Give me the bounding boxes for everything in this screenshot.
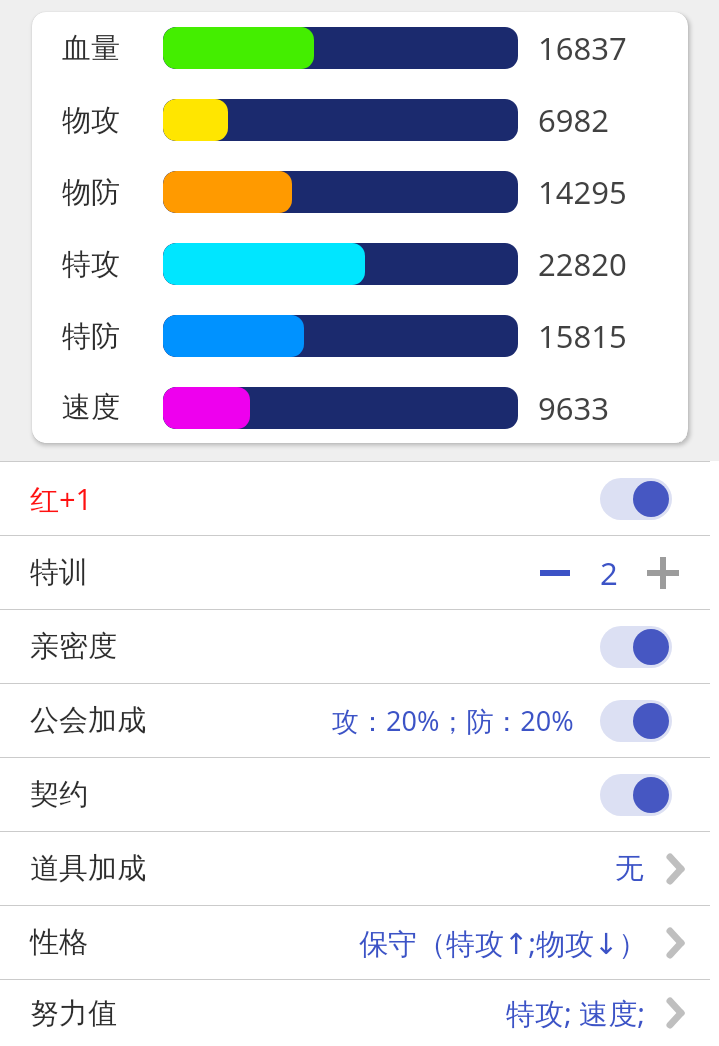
button[interactable]: Toggle — [600, 478, 672, 520]
staticText: 9633 — [538, 387, 609, 429]
staticText: 15815 — [538, 315, 627, 357]
button[interactable]: 亲密度 — [0, 610, 719, 683]
button[interactable]: 公会加成 — [0, 684, 719, 757]
staticText: 血量 — [62, 30, 120, 67]
other: Open — [658, 920, 692, 966]
staticText: 无 — [615, 850, 644, 887]
button[interactable]: 努力值 — [0, 980, 719, 1046]
staticText: 特攻; 速度; — [506, 993, 646, 1033]
staticText: 契约 — [30, 776, 88, 813]
button[interactable]: Increase — [640, 550, 686, 596]
staticText: 道具加成 — [30, 850, 146, 887]
staticText: 性格 — [30, 924, 88, 961]
staticText: 努力值 — [30, 995, 117, 1032]
button[interactable]: 性格 — [0, 906, 719, 979]
staticText: 特防 — [62, 318, 120, 355]
button[interactable]: 红+1 — [0, 462, 719, 535]
other: Open — [658, 990, 692, 1036]
staticText: 16837 — [538, 27, 627, 69]
staticText: 2 — [600, 552, 618, 594]
staticText: 亲密度 — [30, 628, 117, 665]
button[interactable]: 道具加成 — [0, 832, 719, 905]
button[interactable]: Toggle — [600, 700, 672, 742]
staticText: 22820 — [538, 243, 627, 285]
button[interactable]: Toggle — [600, 626, 672, 668]
staticText: 保守（特攻↑;物攻↓） — [359, 923, 648, 963]
button[interactable]: 契约 — [0, 758, 719, 831]
staticText: 攻：20%；防：20% — [332, 702, 574, 739]
staticText: 速度 — [62, 389, 120, 426]
staticText: 特训 — [30, 554, 88, 591]
staticText: 物攻 — [62, 102, 120, 139]
other: Open — [658, 846, 692, 892]
staticText: 14295 — [538, 171, 627, 213]
button[interactable]: Decrease — [532, 550, 578, 596]
staticText: 红+1 — [30, 479, 93, 519]
staticText: 公会加成 — [30, 702, 146, 739]
staticText: 6982 — [538, 99, 609, 141]
staticText: 特攻 — [62, 246, 120, 283]
button[interactable]: Toggle — [600, 774, 672, 816]
button[interactable]: 特训 — [0, 536, 719, 609]
staticText: 物防 — [62, 174, 120, 211]
